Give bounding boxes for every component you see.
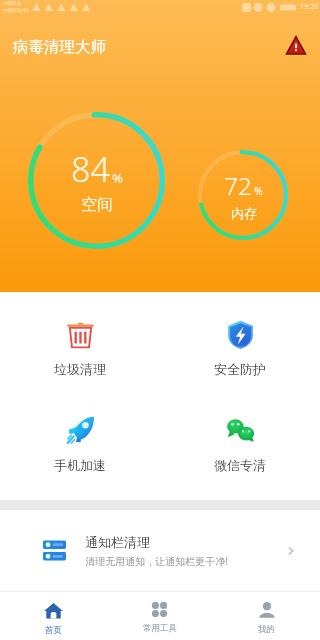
- button[interactable]: 微信专清: [200, 414, 280, 473]
- staticText: %: [254, 184, 263, 198]
- staticText: 中国移动: [3, 1, 21, 7]
- button[interactable]: 我的: [213, 592, 320, 635]
- staticText: 病毒清理大师: [13, 37, 106, 57]
- staticText: 首页: [45, 625, 62, 636]
- button[interactable]: 首页: [0, 592, 106, 636]
- staticText: %: [112, 169, 123, 187]
- staticText: 内存: [231, 205, 257, 221]
- other: Open: [284, 544, 298, 558]
- staticText: 19:20: [300, 2, 318, 12]
- staticText: 84: [71, 146, 110, 192]
- staticText: 通知栏清理: [85, 534, 150, 550]
- button[interactable]: 垃圾清理: [40, 318, 120, 377]
- button[interactable]: 手机加速: [40, 414, 120, 473]
- staticText: 微信专清: [214, 457, 266, 473]
- staticText: 我的: [258, 624, 275, 635]
- staticText: 清理无用通知，让通知栏更干净!: [85, 554, 228, 568]
- staticText: 手机加速: [54, 457, 106, 473]
- button[interactable]: 通知栏清理: [0, 510, 320, 591]
- staticText: 安全防护: [214, 361, 266, 377]
- staticText: 垃圾清理: [54, 361, 106, 377]
- button[interactable]: 常用工具: [106, 592, 213, 634]
- staticText: 常用工具: [143, 623, 177, 634]
- button[interactable]: Security warning: [283, 33, 309, 59]
- staticText: 中国移动 4G: [3, 7, 29, 13]
- staticText: 72: [224, 169, 252, 202]
- staticText: 空间: [81, 195, 113, 215]
- button[interactable]: 安全防护: [200, 318, 280, 377]
